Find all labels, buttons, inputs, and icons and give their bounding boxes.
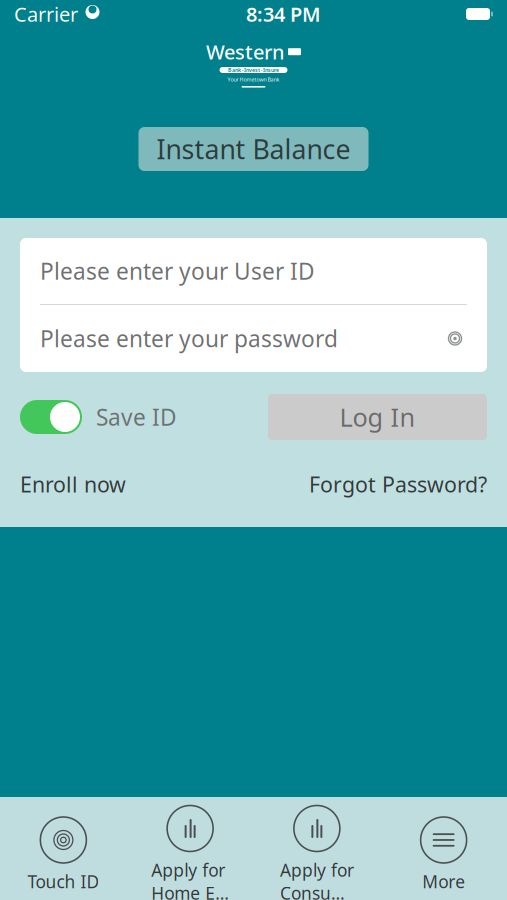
staticText: More <box>422 870 465 893</box>
button[interactable]: Show password <box>433 320 467 356</box>
button[interactable]: Forgot Password? <box>309 464 487 504</box>
button[interactable]: Apply for Home E… <box>127 798 254 900</box>
staticText: Please enter your password <box>40 323 338 353</box>
staticText: Touch ID <box>27 870 99 893</box>
button[interactable]: Save ID <box>20 394 177 440</box>
staticText: Log In <box>339 400 415 434</box>
staticText: Instant Balance <box>156 131 350 167</box>
staticText: Save ID <box>96 402 177 432</box>
staticText: 8:34 PM <box>246 1 321 27</box>
staticText: Bank · Invest · Insure <box>228 66 279 73</box>
staticText: Forgot Password? <box>309 470 487 498</box>
button[interactable]: Log In <box>268 394 487 440</box>
button[interactable]: Touch ID <box>0 810 127 899</box>
button[interactable]: Enroll now <box>20 464 126 504</box>
staticText: Apply for Consu… <box>280 858 354 900</box>
button[interactable]: Apply for Consu… <box>253 798 380 900</box>
staticText: Please enter your User ID <box>40 256 315 286</box>
staticText: Apply for Home E… <box>151 858 229 900</box>
staticText: Carrier <box>14 1 78 27</box>
button[interactable]: More <box>380 810 507 899</box>
button[interactable]: Instant Balance <box>138 127 368 171</box>
staticText: Enroll now <box>20 470 126 498</box>
staticText: Western <box>206 38 285 65</box>
staticText: Your Hometown Bank <box>227 76 279 83</box>
